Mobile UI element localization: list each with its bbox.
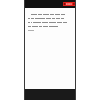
button[interactable]: Logo xyxy=(63,2,75,6)
button[interactable] xyxy=(28,13,72,31)
